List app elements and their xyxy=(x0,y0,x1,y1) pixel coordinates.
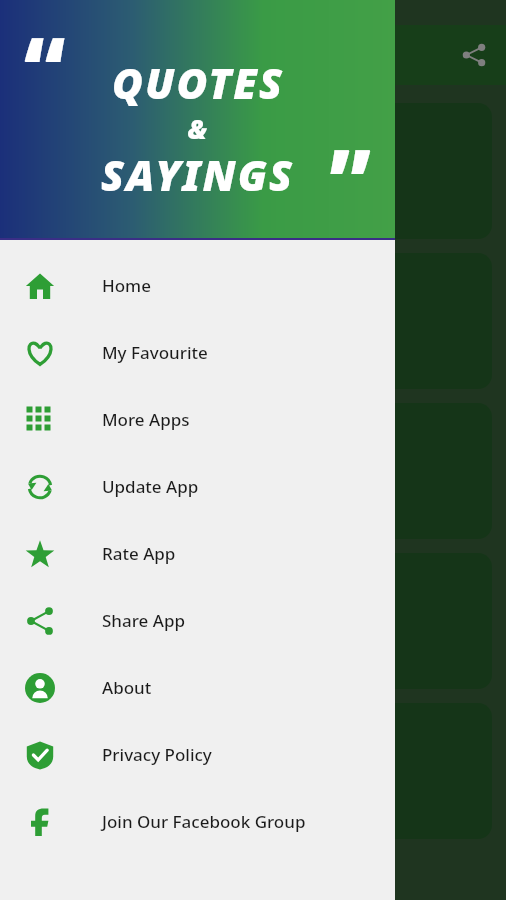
staticText: Update App xyxy=(102,475,199,498)
button[interactable]: Share App xyxy=(0,587,395,654)
button[interactable]: My Favourite xyxy=(14,553,492,689)
staticText: About xyxy=(102,676,152,699)
button[interactable]: About xyxy=(0,654,395,721)
staticText: My Favourite xyxy=(102,341,208,364)
staticText: & xyxy=(188,111,208,146)
button[interactable]: सभी मिलके xyxy=(14,103,492,239)
button[interactable]: More Apps xyxy=(0,386,395,453)
button[interactable]: Rate App xyxy=(0,520,395,587)
button[interactable]: Good Morning xyxy=(14,403,492,539)
button[interactable]: Share xyxy=(450,31,498,79)
staticText: SAYINGS xyxy=(101,146,294,203)
button[interactable]: Privacy Policy xyxy=(0,721,395,788)
staticText: My Favourite xyxy=(32,608,148,634)
staticText: Share App xyxy=(102,609,185,632)
staticText: Good Morning xyxy=(32,458,163,484)
button[interactable]: Quotes & Sayings xyxy=(14,253,492,389)
button[interactable]: Update App xyxy=(0,453,395,520)
staticText: सभी मिलके xyxy=(32,158,112,184)
staticText: Rate App xyxy=(102,542,176,565)
staticText: More xyxy=(32,758,79,784)
staticText: “ xyxy=(24,8,66,122)
staticText: Home xyxy=(102,274,151,297)
staticText: More Apps xyxy=(102,408,190,431)
staticText: Join Our Facebook Group xyxy=(102,810,306,833)
staticText: ” xyxy=(329,120,371,234)
staticText: QUOTES xyxy=(112,54,284,111)
staticText: Privacy Policy xyxy=(102,743,212,766)
button[interactable]: Home xyxy=(0,252,395,319)
button[interactable]: My Favourite xyxy=(0,319,395,386)
button[interactable]: Join Our Facebook Group xyxy=(0,788,395,855)
button[interactable]: More xyxy=(14,703,492,839)
